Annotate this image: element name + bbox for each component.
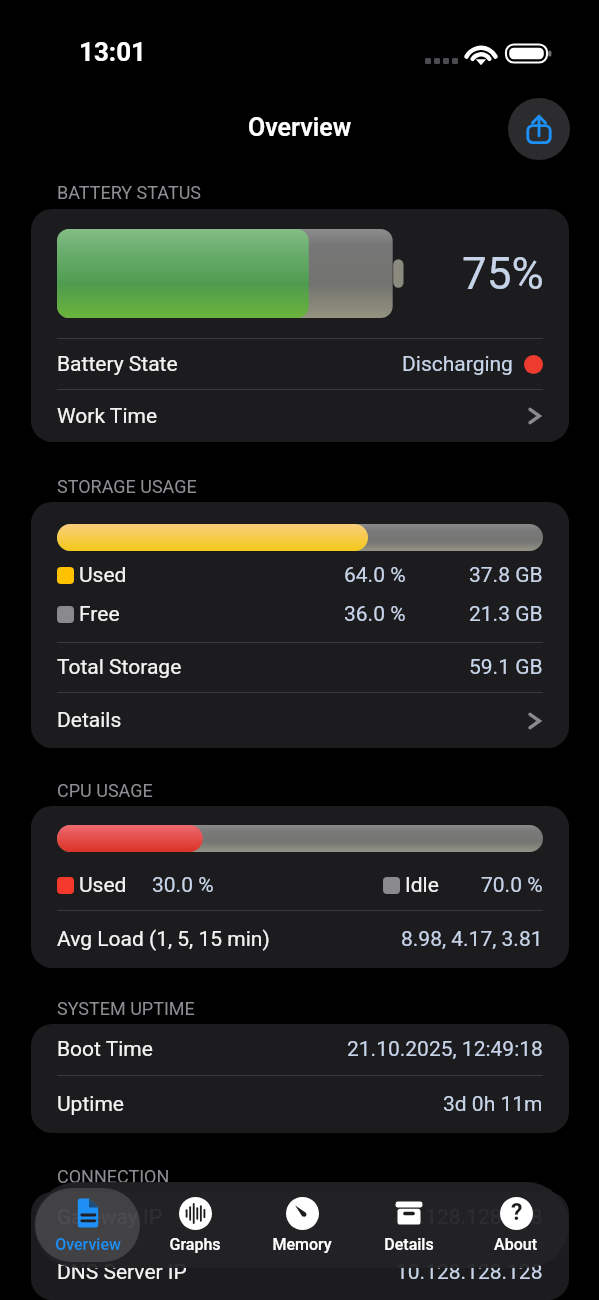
- staticText: 13:01: [79, 37, 146, 67]
- staticText: Free: [79, 602, 120, 627]
- staticText: CPU USAGE: [57, 780, 153, 801]
- staticText: Battery State: [57, 352, 178, 377]
- staticText: 10.128.128.128: [396, 1205, 543, 1230]
- staticText: 10.128.128.128: [396, 1260, 543, 1285]
- staticText: 59.1 GB: [469, 655, 543, 680]
- staticText: Idle: [405, 873, 439, 898]
- staticText: 3d 0h 11m: [443, 1092, 543, 1117]
- staticText: Memory: [272, 1235, 332, 1254]
- button[interactable]: Work Time: [31, 390, 569, 442]
- button[interactable]: Boot Time: [31, 1024, 569, 1075]
- staticText: Overview: [55, 1235, 121, 1254]
- button[interactable]: Share: [508, 98, 570, 160]
- button[interactable]: Total Storage: [31, 643, 569, 692]
- button[interactable]: Gateway IP: [31, 1192, 569, 1243]
- staticText: BATTERY STATUS: [57, 182, 202, 203]
- staticText: Overview: [248, 113, 352, 142]
- staticText: 75%: [462, 248, 544, 300]
- button[interactable]: Avg Load (1, 5, 15 min): [31, 911, 569, 968]
- staticText: ?: [511, 1199, 523, 1226]
- staticText: About: [494, 1235, 537, 1254]
- staticText: Avg Load (1, 5, 15 min): [57, 927, 270, 952]
- staticText: 37.8 GB: [469, 563, 543, 588]
- staticText: STORAGE USAGE: [57, 476, 197, 497]
- button[interactable]: Memory: [249, 1188, 354, 1262]
- staticText: Used: [79, 563, 127, 588]
- button[interactable]: Graphs: [142, 1188, 247, 1262]
- staticText: 30.0 %: [152, 873, 214, 898]
- button[interactable]: Details: [356, 1188, 461, 1262]
- staticText: Used: [79, 873, 127, 898]
- staticText: Gateway IP: [57, 1205, 162, 1230]
- staticText: DNS Server IP: [57, 1260, 187, 1285]
- staticText: Boot Time: [57, 1037, 153, 1062]
- button[interactable]: DNS Server IP: [31, 1244, 569, 1300]
- button[interactable]: Uptime: [31, 1076, 569, 1133]
- staticText: Work Time: [57, 404, 158, 429]
- staticText: Details: [384, 1235, 434, 1254]
- staticText: SYSTEM UPTIME: [57, 998, 195, 1019]
- staticText: Uptime: [57, 1092, 124, 1117]
- staticText: 64.0 %: [344, 563, 406, 588]
- staticText: Total Storage: [57, 655, 182, 680]
- button[interactable]: ?: [463, 1188, 568, 1262]
- staticText: 21.3 GB: [469, 602, 543, 627]
- staticText: Discharging: [402, 352, 513, 377]
- staticText: Graphs: [169, 1235, 221, 1254]
- button[interactable]: Overview: [35, 1188, 140, 1262]
- button[interactable]: Battery State: [31, 339, 569, 389]
- staticText: CONNECTION: [57, 1166, 170, 1187]
- staticText: 70.0 %: [481, 873, 543, 898]
- staticText: 36.0 %: [344, 602, 406, 627]
- staticText: 21.10.2025, 12:49:18: [347, 1037, 543, 1062]
- button[interactable]: Details: [31, 693, 569, 748]
- staticText: 8.98, 4.17, 3.81: [401, 927, 543, 952]
- staticText: Details: [57, 708, 122, 733]
